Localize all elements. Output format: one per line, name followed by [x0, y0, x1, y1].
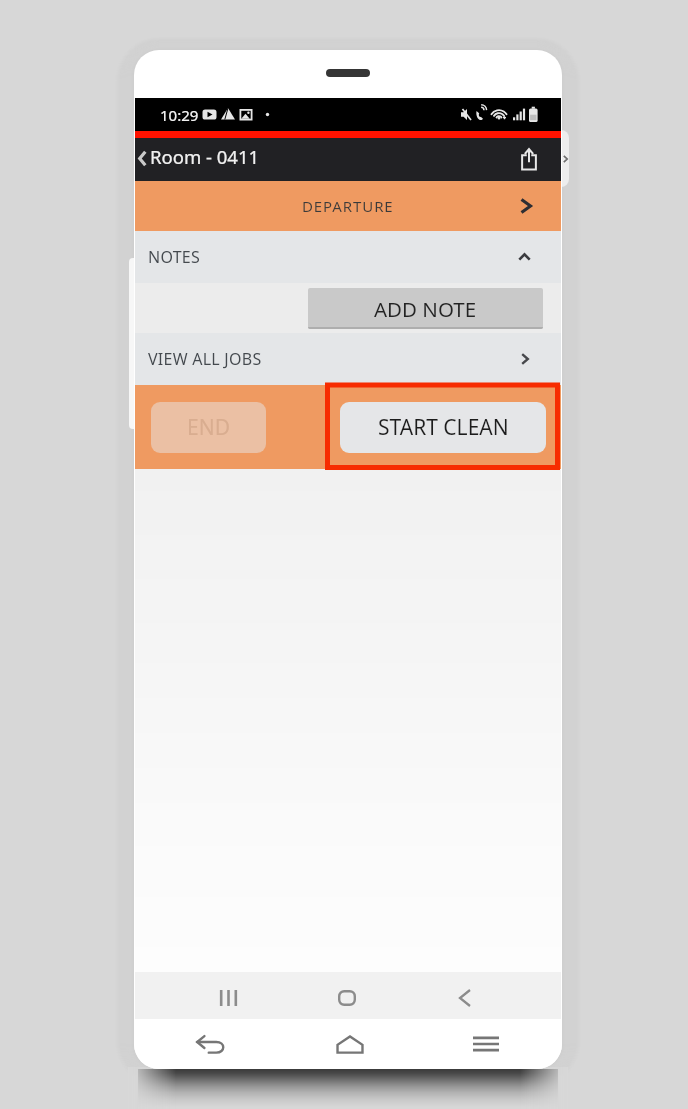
button[interactable]: Expand panel — [552, 130, 569, 187]
staticText: 10:29 — [160, 105, 199, 125]
staticText: NOTES — [148, 246, 201, 268]
button[interactable]: Back — [135, 137, 150, 180]
button[interactable]: DEPARTURE — [135, 181, 561, 231]
button[interactable]: Share — [496, 138, 561, 181]
button[interactable]: Recents — [200, 974, 256, 1021]
button[interactable]: Back — [182, 1019, 238, 1069]
staticText: ADD NOTE — [374, 295, 477, 323]
staticText: Room - 0411 — [150, 144, 260, 169]
button[interactable]: Home — [322, 1019, 378, 1069]
button[interactable]: Menu — [458, 1019, 514, 1069]
button[interactable]: Back — [437, 974, 493, 1021]
staticText: START CLEAN — [378, 413, 509, 442]
staticText: DEPARTURE — [302, 196, 394, 216]
button[interactable]: NOTES — [135, 231, 561, 283]
button[interactable]: ADD NOTE — [308, 288, 543, 329]
button[interactable]: END — [151, 402, 266, 453]
staticText: END — [187, 413, 230, 442]
button[interactable]: START CLEAN — [340, 402, 546, 453]
button[interactable]: Home — [319, 974, 375, 1021]
staticText: VIEW ALL JOBS — [148, 348, 262, 370]
button[interactable]: VIEW ALL JOBS — [135, 333, 561, 385]
